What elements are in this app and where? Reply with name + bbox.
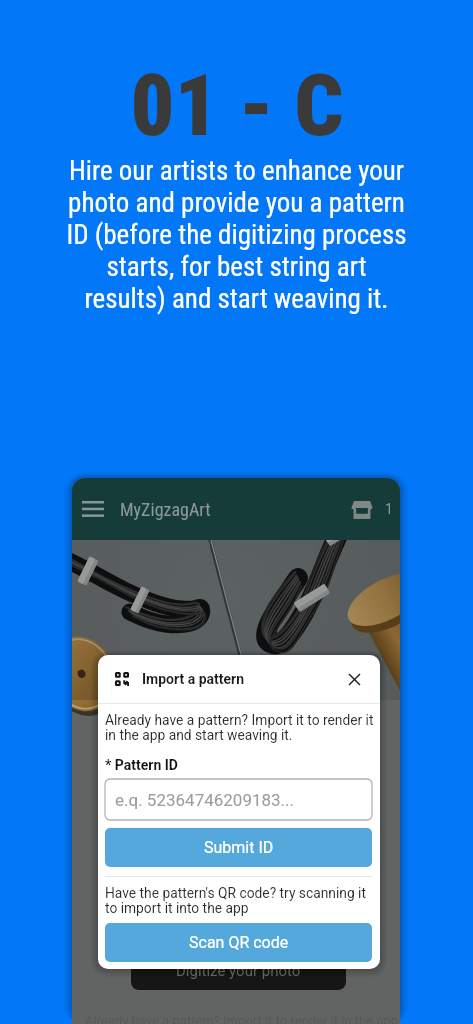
button[interactable]: Scan QR code [105, 923, 372, 962]
staticText: Import a pattern [142, 671, 245, 687]
button[interactable]: Store [347, 494, 377, 524]
staticText: * Pattern ID [105, 757, 178, 773]
staticText: Digitize your photo [176, 962, 301, 980]
staticText: Submit ID [204, 838, 274, 857]
staticText: Have the pattern's QR code? try scanning… [105, 885, 380, 916]
staticText: Scan QR code [189, 933, 289, 952]
button[interactable]: e.q. 52364746209183... [105, 779, 372, 820]
staticText: Hire our artists to enhance your photo a… [64, 155, 409, 315]
staticText: MyZigzagArt [120, 499, 211, 520]
button[interactable]: Submit ID [105, 828, 372, 867]
button[interactable]: Digitize your photo [131, 952, 346, 990]
staticText: 01 - C [130, 55, 344, 156]
staticText: Already have a pattern? Import it to ren… [85, 1013, 398, 1024]
staticText: e.q. 52364746209183... [115, 790, 295, 810]
staticText: 1 [385, 501, 393, 517]
button[interactable]: Open navigation menu [74, 490, 112, 528]
button[interactable]: Close dialog [342, 667, 366, 691]
staticText: Already have a pattern? Import it to ren… [105, 712, 380, 743]
